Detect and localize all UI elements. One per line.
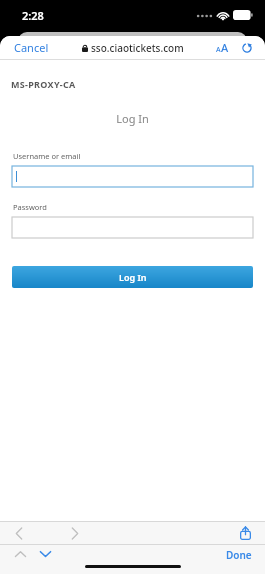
staticText: Password [13,202,47,212]
button[interactable]: Next field [36,547,55,561]
button[interactable]: Back [12,524,26,543]
staticText: Done [226,548,252,562]
staticText: Cancel [14,40,49,55]
button[interactable]: Done [223,546,255,564]
button[interactable]: Log In [12,266,253,288]
button[interactable]: Cancel [10,38,53,57]
staticText: MS-PROXY-CA [11,78,76,90]
staticText: Username or email [13,151,81,161]
button[interactable]: Share [238,524,253,542]
staticText: Log In [0,111,265,126]
staticText: 2:28 [22,8,44,23]
button[interactable]: Text size options [214,38,231,57]
button[interactable]: Reload page [239,40,255,56]
button[interactable] [12,217,253,238]
button[interactable] [12,166,253,187]
staticText: sso.ciaotickets.com [91,41,184,55]
button[interactable]: Forward [68,524,82,543]
button[interactable]: Previous field [11,547,30,561]
staticText: A [216,45,221,55]
staticText: Log In [119,271,147,283]
staticText: A [221,40,229,55]
